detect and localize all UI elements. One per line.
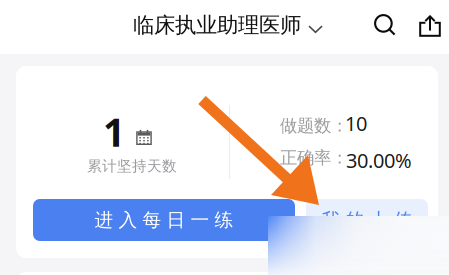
button[interactable]: Share: [419, 15, 441, 37]
staticText: 做题数：: [280, 115, 348, 136]
staticText: 1: [103, 106, 125, 157]
staticText: 我的上传: [321, 208, 412, 231]
staticText: 正确率：: [280, 147, 348, 168]
button[interactable]: 我的上传: [306, 199, 428, 241]
staticText: 累计坚持天数: [87, 157, 177, 175]
staticText: 30.00%: [346, 147, 412, 174]
button[interactable]: 进入每日一练: [33, 199, 295, 241]
staticText: 10: [345, 110, 367, 137]
staticText: 进入每日一练: [94, 208, 233, 231]
staticText: 临床执业助理医师: [133, 12, 301, 38]
button[interactable]: Search: [374, 14, 396, 36]
button[interactable]: 临床执业助理医师: [133, 4, 323, 46]
